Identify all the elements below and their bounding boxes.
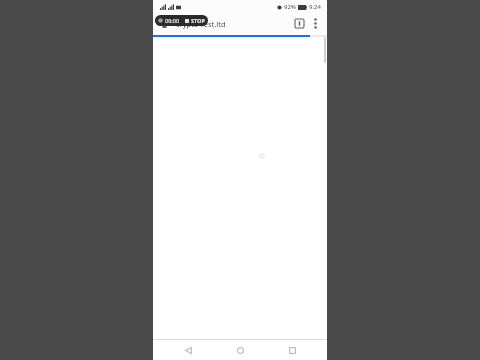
button[interactable]: Back (171, 340, 205, 360)
staticText: 92% (284, 3, 296, 11)
button[interactable]: 00:00 (155, 15, 208, 26)
staticText: 9:24 (309, 3, 321, 11)
staticText: crypto-rest.ltd (176, 19, 226, 29)
button[interactable]: Home (157, 17, 171, 31)
button[interactable]: Recent apps (275, 340, 309, 360)
button[interactable]: Tabs (292, 16, 307, 31)
button[interactable]: Home (223, 340, 257, 360)
staticText: 00:00 (165, 17, 180, 24)
button[interactable]: crypto-rest.ltd (174, 15, 292, 33)
button[interactable]: More options (308, 16, 323, 31)
staticText: STOP (191, 17, 205, 24)
